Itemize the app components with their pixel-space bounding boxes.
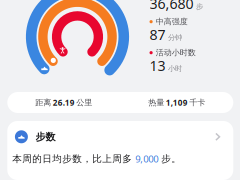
staticText: 小时	[168, 64, 182, 73]
staticText: 分钟	[168, 33, 182, 42]
staticText: 热量	[148, 97, 164, 108]
staticText: 87	[149, 25, 165, 44]
button[interactable]: 步数	[7, 121, 233, 180]
staticText: 千卡	[189, 97, 205, 108]
staticText: 中高强度	[156, 17, 188, 27]
staticText: 1,109	[166, 97, 188, 108]
staticText: 步。	[158, 153, 181, 165]
staticText: 9,000	[135, 152, 158, 165]
staticText: 步数	[35, 130, 55, 143]
staticText: 本周的日均步数，比上周多	[12, 153, 135, 165]
staticText: 26.19	[53, 97, 75, 108]
staticText: 36,680	[149, 0, 193, 13]
staticText: 13	[149, 56, 165, 75]
staticText: 步	[196, 2, 203, 11]
staticText: 距离	[35, 97, 51, 108]
staticText: 活动小时数	[156, 48, 196, 58]
staticText: 公里	[76, 97, 92, 108]
